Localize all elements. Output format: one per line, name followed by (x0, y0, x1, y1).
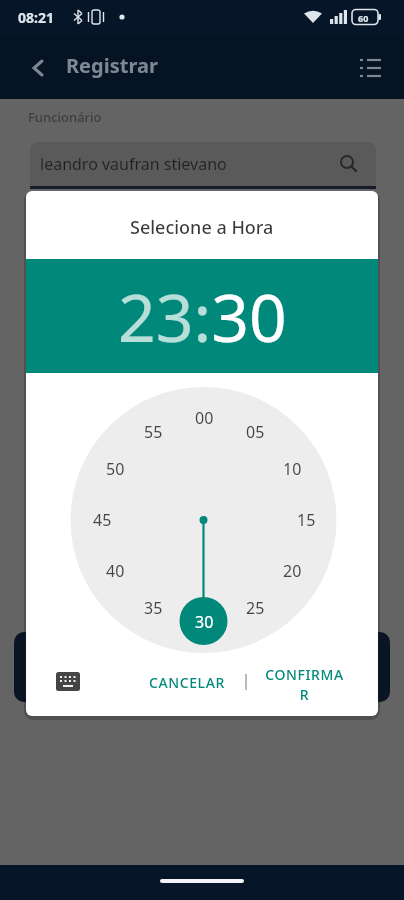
staticText: 00 (195, 407, 214, 429)
staticText: 35 (144, 597, 163, 619)
staticText: 10 (283, 458, 302, 480)
staticText: 40 (106, 560, 125, 582)
staticText: 45 (93, 509, 112, 531)
staticText: Selecione a Hora (130, 215, 274, 240)
staticText: 15 (297, 509, 316, 531)
button[interactable] (22, 52, 54, 84)
button[interactable]: leandro vaufran stievano (30, 142, 376, 186)
button[interactable]: CONFIRMA R (254, 661, 354, 707)
staticText: CANCELAR (149, 673, 225, 692)
staticText: Registrar (66, 52, 158, 79)
staticText: 05 (246, 421, 265, 443)
button[interactable] (350, 48, 390, 88)
button[interactable]: CANCELAR (136, 665, 238, 699)
button[interactable] (46, 659, 90, 703)
staticText: CONFIRMA R (265, 665, 344, 704)
staticText: 30 (195, 611, 214, 633)
staticText: 25 (246, 597, 265, 619)
staticText: 08:21 (18, 8, 54, 27)
staticText: Funcionário (28, 108, 102, 126)
staticText: 23:30 (118, 271, 287, 361)
staticText: leandro vaufran stievano (40, 153, 227, 175)
staticText: 55 (144, 421, 163, 443)
button[interactable] (14, 632, 390, 702)
staticText: 20 (283, 560, 302, 582)
staticText: 50 (106, 458, 125, 480)
staticText: 60 (358, 12, 369, 24)
